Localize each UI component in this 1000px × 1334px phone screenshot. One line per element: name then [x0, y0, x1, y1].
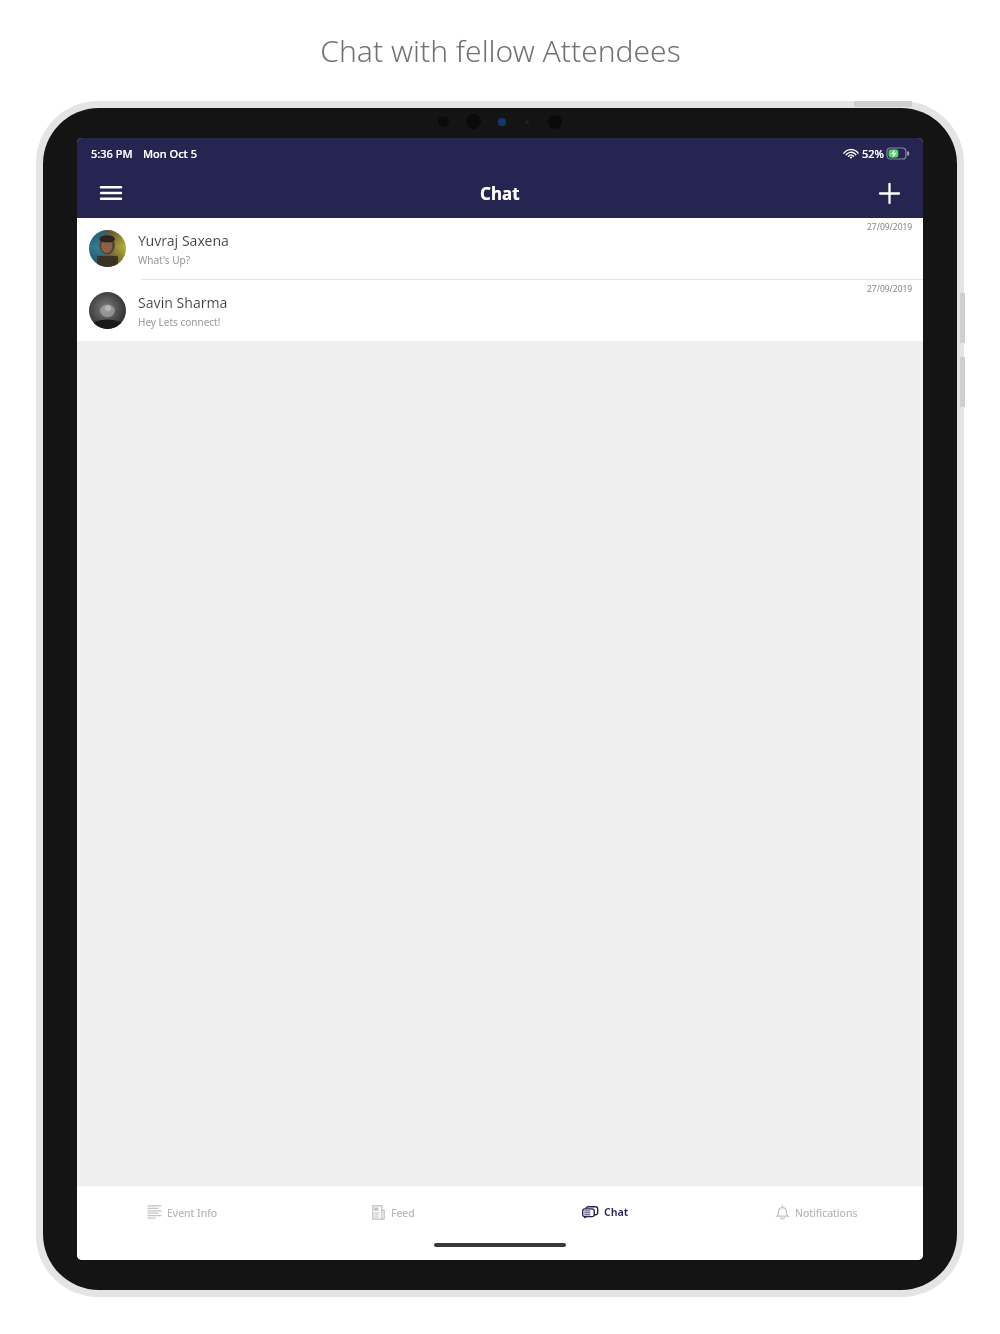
- staticText: 27/09/2019: [867, 221, 913, 233]
- staticText: Notifications: [795, 1206, 858, 1220]
- staticText: Feed: [391, 1206, 415, 1220]
- staticText: What's Up?: [138, 253, 191, 267]
- button[interactable]: Chat: [499, 1186, 711, 1238]
- staticText: Mon Oct 5: [143, 146, 197, 161]
- staticText: Savin Sharma: [138, 293, 228, 312]
- staticText: Hey Lets connect!: [138, 315, 221, 329]
- staticText: 27/09/2019: [867, 283, 913, 295]
- staticText: Event Info: [167, 1206, 218, 1220]
- staticText: 52%: [862, 146, 884, 161]
- button[interactable]: Feed: [288, 1186, 499, 1238]
- button[interactable]: New chat: [867, 171, 911, 215]
- staticText: Yuvraj Saxena: [138, 231, 229, 250]
- staticText: 5:36 PM: [91, 146, 133, 161]
- staticText: Chat: [480, 182, 520, 205]
- button[interactable]: Open navigation menu: [89, 171, 133, 215]
- staticText: Chat with fellow Attendees: [320, 30, 681, 71]
- button[interactable]: Event Info: [77, 1186, 288, 1238]
- button[interactable]: 27/09/2019: [77, 280, 923, 341]
- button[interactable]: 27/09/2019: [77, 218, 923, 279]
- staticText: Chat: [604, 1205, 629, 1219]
- button[interactable]: Notifications: [711, 1186, 923, 1238]
